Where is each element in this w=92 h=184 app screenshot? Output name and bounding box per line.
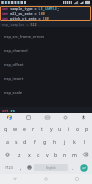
button[interactable]: n [61,149,69,160]
button[interactable]: e [20,123,28,134]
staticText: nsp_channel [4,48,28,53]
staticText: b [54,151,58,158]
button[interactable]: Enter [77,162,91,173]
button[interactable]: y [47,123,55,134]
button[interactable]: nsp_channel [0,43,92,57]
button[interactable]: r [29,123,37,134]
staticText: ?123 [5,165,13,170]
button[interactable]: q [1,123,10,134]
button[interactable]: . [69,162,76,173]
button[interactable]: b [52,149,60,160]
staticText: u [58,125,62,132]
staticText: z [18,151,21,158]
staticText: nsp_src_frame_errors [4,34,45,39]
staticText: o [76,125,80,132]
button[interactable]: m [70,149,78,160]
staticText: m [72,151,77,158]
button[interactable]: v [43,149,51,160]
button[interactable]: z [15,149,24,160]
button[interactable]: w [11,123,19,134]
staticText: nsp_scale [4,90,22,95]
staticText: English [46,166,56,170]
button[interactable]: u [56,123,64,134]
staticText: w [13,125,18,132]
button[interactable]: a [3,136,11,147]
staticText: y [50,125,53,132]
button[interactable]: nsp_src_frame_errors [0,29,92,43]
staticText: nsp_insert [4,76,24,81]
button[interactable]: x [25,149,33,160]
staticText: x [28,151,31,158]
button[interactable]: f [30,136,39,147]
staticText: int mll_ru_rate = 100 [2,11,45,16]
button[interactable]: Home [30,174,61,184]
button[interactable]: t [38,123,46,134]
staticText: set rs [2,108,15,113]
button[interactable]: s [12,136,20,147]
staticText: l [84,138,86,145]
button[interactable]: nsp_scale [0,85,92,99]
button[interactable]: o [74,123,82,134]
staticText: a [6,138,9,145]
staticText: . [72,164,74,171]
staticText: nsp_offset [4,62,24,67]
button[interactable]: Settings [56,113,74,122]
button[interactable]: ?123 [1,162,16,173]
staticText: v [46,151,49,158]
staticText: h [53,138,57,145]
button[interactable]: Recents [61,174,92,184]
staticText: int pitch_ct_rate = 180 [2,16,49,21]
button[interactable]: k [70,136,79,147]
button[interactable]: nsp_offset [0,57,92,71]
staticText: nsp_samples = 512 [2,22,37,27]
staticText: s [15,138,18,145]
button[interactable]: Google search [0,113,19,122]
button[interactable]: Backspace [79,149,91,160]
staticText: e [23,125,26,132]
staticText: g [43,138,47,145]
button[interactable]: p [83,123,91,134]
button[interactable]: , [17,162,24,173]
staticText: r [32,125,35,132]
button[interactable]: i [65,123,73,134]
staticText: i [68,125,70,132]
button[interactable]: GIF [38,113,56,122]
button[interactable]: Emoji [25,162,33,173]
button[interactable]: c [34,149,42,160]
staticText: n [63,151,67,158]
staticText: c [37,151,40,158]
staticText: t [41,125,43,132]
button[interactable]: g [40,136,49,147]
button[interactable]: Back [0,174,30,184]
staticText: d [23,138,27,145]
button[interactable]: l [80,136,89,147]
button[interactable]: j [60,136,69,147]
staticText: q [4,125,8,132]
button[interactable]: d [21,136,29,147]
staticText: k [73,138,76,145]
staticText: int sample_type = LE_SAMPLE; [2,6,59,11]
button[interactable]: nsp_insert [0,71,92,85]
staticText: j [64,138,66,145]
staticText: , [20,164,22,171]
button[interactable]: Stickers [19,113,38,122]
staticText: p [85,125,89,132]
staticText: f [34,138,36,145]
button[interactable]: Voice input [74,113,92,122]
button[interactable]: h [50,136,59,147]
button[interactable]: Space [34,164,68,171]
button[interactable]: Shift [1,149,14,160]
